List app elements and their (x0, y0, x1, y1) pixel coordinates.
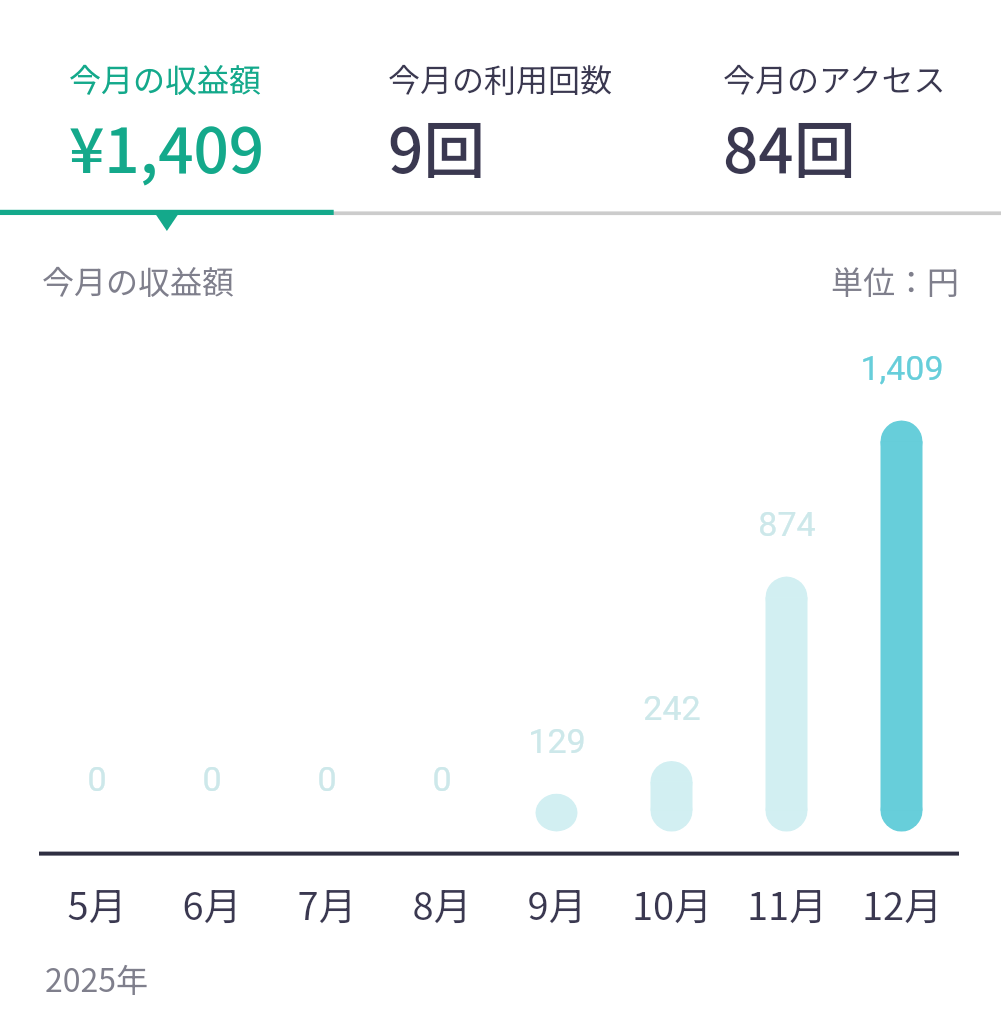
staticText: 今月の収益額 (69, 55, 262, 101)
staticText: 874 (717, 504, 857, 544)
staticText: 8月 (372, 876, 512, 931)
staticText: 今月のアクセス (723, 55, 946, 101)
staticText: 0 (142, 759, 282, 799)
staticText: 今月の利用回数 (388, 55, 613, 101)
staticText: 12月 (832, 876, 972, 931)
staticText: ¥1,409 (69, 101, 265, 191)
other: 月別収益額の棒グラフ (0, 0, 1001, 1024)
button[interactable]: 今月の利用回数 (333, 0, 667, 210)
staticText: 9回 (388, 101, 486, 191)
staticText: 10月 (602, 876, 742, 931)
staticText: 単位：円 (0, 257, 959, 303)
staticText: 11月 (717, 876, 857, 931)
staticText: 0 (372, 759, 512, 799)
staticText: 242 (602, 688, 742, 728)
button[interactable]: 今月の収益額 (0, 0, 333, 210)
staticText: 6月 (142, 876, 282, 931)
staticText: 今月の収益額 (42, 257, 235, 303)
staticText: 7月 (257, 876, 397, 931)
staticText: 9月 (487, 876, 627, 931)
staticText: 5月 (27, 876, 167, 931)
staticText: 84回 (723, 101, 856, 191)
button[interactable]: 今月のアクセス (667, 0, 1001, 210)
staticText: 0 (27, 759, 167, 799)
staticText: 2025年 (45, 955, 149, 1001)
staticText: 1,409 (832, 348, 972, 388)
staticText: 129 (487, 721, 627, 761)
staticText: 0 (257, 759, 397, 799)
